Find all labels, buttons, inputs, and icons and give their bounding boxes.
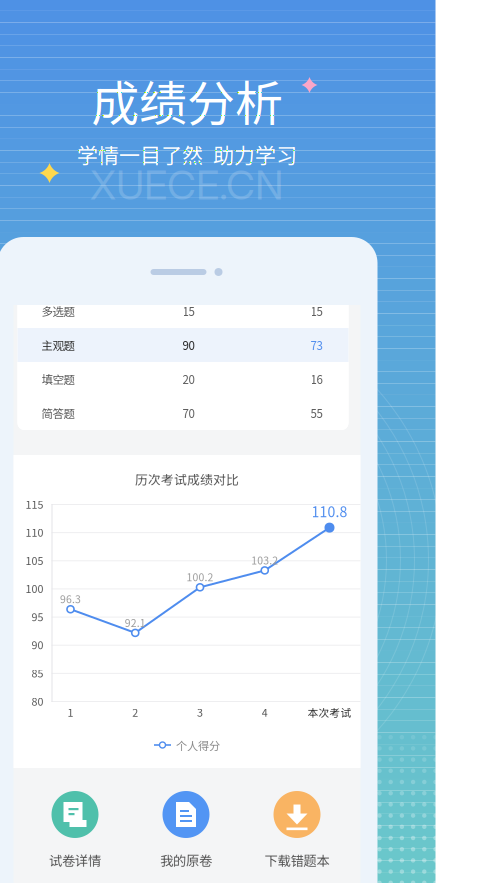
staticText: 90 (31, 637, 43, 652)
staticText: 历次考试成绩对比 (135, 470, 239, 488)
staticText: 105 (25, 553, 43, 568)
button[interactable]: 我的原卷 (130, 791, 241, 871)
staticText: 1 (67, 704, 73, 720)
staticText: 成绩分析 (91, 65, 283, 135)
staticText: 试卷详情 (49, 850, 101, 870)
staticText: 100.2 (186, 569, 213, 584)
staticText: XUECE.CN (90, 161, 284, 209)
staticText: 95 (31, 609, 43, 624)
staticText: 73 (310, 337, 322, 353)
staticText: 4 (262, 704, 268, 720)
button[interactable]: 下载错题本 (241, 791, 352, 871)
staticText: 103.2 (251, 552, 278, 567)
staticText: 20 (182, 371, 194, 387)
staticText: 55 (310, 405, 322, 421)
staticText: 个人得分 (176, 737, 220, 753)
staticText: 96.3 (60, 591, 81, 606)
staticText: 简答题 (41, 405, 74, 421)
staticText: 110.8 (311, 501, 347, 521)
staticText: 16 (310, 371, 322, 387)
staticText: 15 (310, 303, 322, 319)
staticText: 80 (31, 693, 43, 709)
staticText: 主观题 (41, 337, 74, 353)
button[interactable]: 试卷详情 (19, 791, 130, 871)
staticText: 下载错题本 (264, 850, 329, 870)
staticText: 多选题 (41, 303, 74, 319)
staticText: 3 (197, 704, 203, 720)
staticText: 100 (25, 581, 43, 596)
staticText: 85 (31, 665, 43, 680)
staticText: 2 (132, 704, 138, 720)
staticText: 学情一目了然 助力学习 (77, 139, 297, 169)
staticText: 92.1 (125, 615, 146, 630)
staticText: 我的原卷 (160, 850, 212, 870)
staticText: 70 (182, 405, 194, 421)
staticText: 填空题 (41, 371, 74, 387)
staticText: 110 (25, 524, 43, 540)
staticText: 本次考试 (307, 704, 351, 720)
staticText: 90 (182, 337, 194, 353)
staticText: 115 (25, 496, 43, 512)
staticText: 15 (182, 303, 194, 319)
